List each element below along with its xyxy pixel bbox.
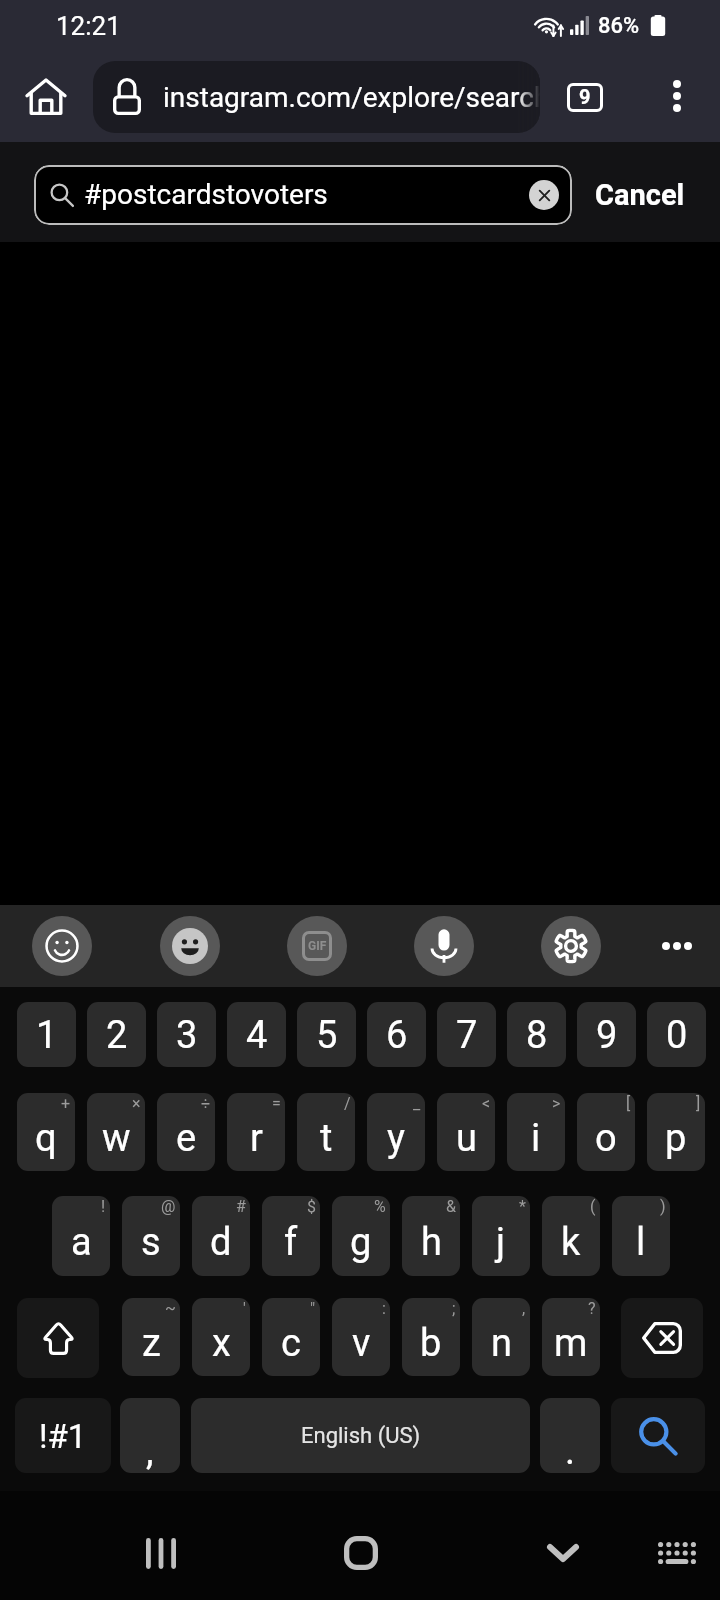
staticText: = <box>272 1094 281 1113</box>
button[interactable]: 4 <box>227 1002 286 1067</box>
button[interactable]: w <box>87 1093 145 1171</box>
button[interactable]: m <box>542 1298 600 1376</box>
button[interactable]: instagram.com/explore/search <box>93 61 540 133</box>
button[interactable]: b <box>402 1298 460 1376</box>
button[interactable]: Search <box>611 1398 705 1473</box>
staticText: Cancel <box>595 178 685 212</box>
button[interactable]: i <box>507 1093 565 1171</box>
staticText: : <box>382 1299 386 1318</box>
staticText: , <box>146 1429 154 1473</box>
button[interactable]: 2 <box>87 1002 146 1067</box>
button[interactable]: Home <box>328 1520 394 1586</box>
staticText: ~ <box>165 1299 176 1318</box>
staticText: 7 <box>456 1013 478 1058</box>
button[interactable]: 5 <box>297 1002 356 1067</box>
button[interactable]: Recent apps <box>128 1520 194 1586</box>
button[interactable]: r <box>227 1093 285 1171</box>
button[interactable]: #postcardstovoters <box>34 165 572 225</box>
button[interactable]: Space <box>191 1398 530 1473</box>
button[interactable]: 3 <box>157 1002 216 1067</box>
staticText: q <box>35 1116 57 1161</box>
button[interactable]: s <box>122 1196 180 1276</box>
staticText: n <box>491 1321 512 1366</box>
staticText: @ <box>161 1197 176 1216</box>
button[interactable]: v <box>332 1298 390 1376</box>
button[interactable]: 9 <box>577 1002 636 1067</box>
button[interactable]: 7 <box>437 1002 496 1067</box>
staticText: !#1 <box>39 1417 87 1456</box>
button[interactable]: 8 <box>507 1002 566 1067</box>
button[interactable]: Stickers <box>160 916 220 976</box>
button[interactable]: Comma <box>120 1398 180 1473</box>
button[interactable]: Symbols <box>15 1398 111 1473</box>
button[interactable]: Switch keyboard <box>644 1520 710 1586</box>
staticText: . <box>565 1429 576 1473</box>
button[interactable]: 1 <box>17 1002 76 1067</box>
button[interactable]: Tabs, 9 open <box>561 73 609 121</box>
staticText: , <box>522 1299 526 1318</box>
button[interactable]: More keyboard options <box>646 915 708 977</box>
staticText: ] <box>696 1094 701 1113</box>
button[interactable]: f <box>262 1196 320 1276</box>
button[interactable]: l <box>612 1196 670 1276</box>
button[interactable]: e <box>157 1093 215 1171</box>
button[interactable]: y <box>367 1093 425 1171</box>
staticText: 8 <box>526 1013 548 1058</box>
button[interactable]: Shift <box>17 1298 99 1378</box>
staticText: z <box>142 1321 161 1366</box>
staticText: #postcardstovoters <box>84 178 328 211</box>
staticText: h <box>421 1220 442 1265</box>
staticText: ' <box>243 1299 246 1318</box>
button[interactable]: n <box>472 1298 530 1376</box>
staticText: m <box>554 1321 588 1366</box>
staticText: r <box>250 1116 263 1161</box>
staticText: [ <box>626 1094 631 1113</box>
button[interactable]: t <box>297 1093 355 1171</box>
button[interactable]: Hide keyboard <box>530 1520 596 1586</box>
button[interactable]: GIF <box>287 916 347 976</box>
staticText: & <box>446 1197 456 1216</box>
staticText: t <box>320 1116 333 1161</box>
staticText: GIF <box>308 939 327 953</box>
button[interactable]: c <box>262 1298 320 1376</box>
button[interactable]: p <box>647 1093 705 1171</box>
staticText: l <box>636 1220 646 1265</box>
button[interactable]: 6 <box>367 1002 426 1067</box>
button[interactable]: u <box>437 1093 495 1171</box>
button[interactable]: k <box>542 1196 600 1276</box>
button[interactable]: g <box>332 1196 390 1276</box>
staticText: 0 <box>666 1013 688 1058</box>
button[interactable]: h <box>402 1196 460 1276</box>
button[interactable]: Backspace <box>621 1298 703 1378</box>
button[interactable]: o <box>577 1093 635 1171</box>
button[interactable]: Home page <box>20 70 72 122</box>
button[interactable]: x <box>192 1298 250 1376</box>
button[interactable]: Period <box>540 1398 600 1473</box>
button[interactable]: d <box>192 1196 250 1276</box>
button[interactable]: z <box>122 1298 180 1376</box>
button[interactable]: j <box>472 1196 530 1276</box>
button[interactable]: Voice input <box>414 916 474 976</box>
button[interactable]: 0 <box>647 1002 706 1067</box>
button[interactable]: q <box>17 1093 75 1171</box>
staticText: y <box>387 1116 405 1161</box>
staticText: f <box>284 1220 298 1265</box>
staticText: instagram.com/explore/search <box>163 81 540 114</box>
staticText: i <box>531 1116 541 1161</box>
staticText: × <box>132 1094 141 1113</box>
staticText: < <box>482 1094 491 1113</box>
button[interactable]: a <box>52 1196 110 1276</box>
button[interactable]: Keyboard settings <box>541 916 601 976</box>
button[interactable]: Emoji <box>32 916 92 976</box>
staticText: 9 <box>596 1013 618 1058</box>
staticText: k <box>561 1220 581 1265</box>
staticText: _ <box>413 1094 421 1113</box>
button[interactable]: More options <box>652 71 702 121</box>
staticText: 2 <box>106 1013 128 1058</box>
staticText: o <box>595 1116 617 1161</box>
button[interactable]: Clear search <box>529 180 559 210</box>
button[interactable]: Cancel <box>586 165 694 225</box>
staticText: 9 <box>579 85 591 108</box>
staticText: % <box>374 1197 386 1216</box>
staticText: x <box>212 1321 231 1366</box>
